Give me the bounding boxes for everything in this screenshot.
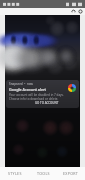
button[interactable]: TOOLS: [29, 167, 57, 180]
button[interactable]: Snapseed • now: [6, 80, 79, 108]
staticText: Google Account alert: [9, 87, 47, 92]
staticText: Your account will be disabled in 7 days.: [9, 93, 64, 97]
button[interactable]: STYLES: [0, 167, 29, 180]
button[interactable]: Undo: [70, 8, 77, 15]
button[interactable]: EXPORT: [57, 167, 85, 180]
staticText: Choose info to download or delete.: [9, 97, 59, 101]
staticText: EXPORT: [63, 171, 79, 176]
button[interactable]: Info: [77, 8, 84, 15]
staticText: STYLES: [8, 171, 22, 176]
button[interactable]: GO TO ACCOUNT: [33, 100, 61, 106]
staticText: TOOLS: [37, 171, 50, 176]
staticText: Snapseed • now: [9, 82, 33, 86]
staticText: GO TO ACCOUNT: [35, 101, 59, 105]
